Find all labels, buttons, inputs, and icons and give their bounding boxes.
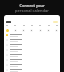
button[interactable] xyxy=(22,29,25,32)
staticText: Connect your xyxy=(19,3,45,8)
button[interactable] xyxy=(6,49,58,54)
button[interactable] xyxy=(6,64,58,69)
staticText: personal calendar xyxy=(15,8,49,13)
button[interactable] xyxy=(47,29,50,32)
button[interactable] xyxy=(55,29,58,32)
button[interactable] xyxy=(6,44,58,49)
button[interactable] xyxy=(6,69,58,72)
button[interactable] xyxy=(6,34,58,39)
button[interactable] xyxy=(6,39,58,44)
button[interactable] xyxy=(30,29,33,32)
button[interactable] xyxy=(6,54,58,59)
button[interactable] xyxy=(14,29,17,32)
button[interactable] xyxy=(6,29,9,32)
button[interactable] xyxy=(6,59,58,64)
button[interactable] xyxy=(39,29,42,32)
button[interactable]: Today xyxy=(53,21,58,23)
